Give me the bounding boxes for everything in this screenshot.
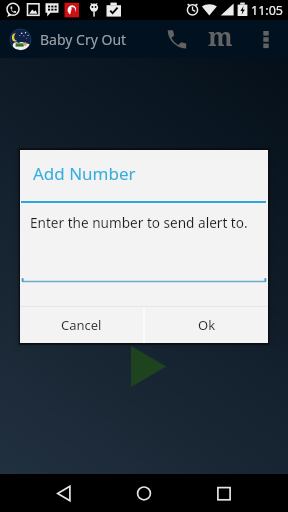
button[interactable]: Cancel: [20, 307, 143, 343]
staticText: Add Number: [33, 162, 136, 185]
staticText: Cancel: [61, 316, 102, 334]
button[interactable]: Messages: [200, 20, 239, 58]
button[interactable]: More options: [246, 20, 285, 58]
button[interactable]: Recent apps: [184, 474, 264, 512]
staticText: Baby Cry Out: [40, 30, 127, 49]
staticText: Ok: [198, 316, 216, 334]
staticText: m: [208, 19, 233, 53]
button[interactable]: Home: [104, 474, 184, 512]
staticText: Enter the number to send alert to.: [30, 213, 248, 232]
button[interactable]: Back: [24, 474, 104, 512]
staticText: 11:05: [251, 2, 283, 19]
button[interactable]: Ok: [145, 307, 268, 343]
button[interactable]: Call: [157, 20, 196, 58]
